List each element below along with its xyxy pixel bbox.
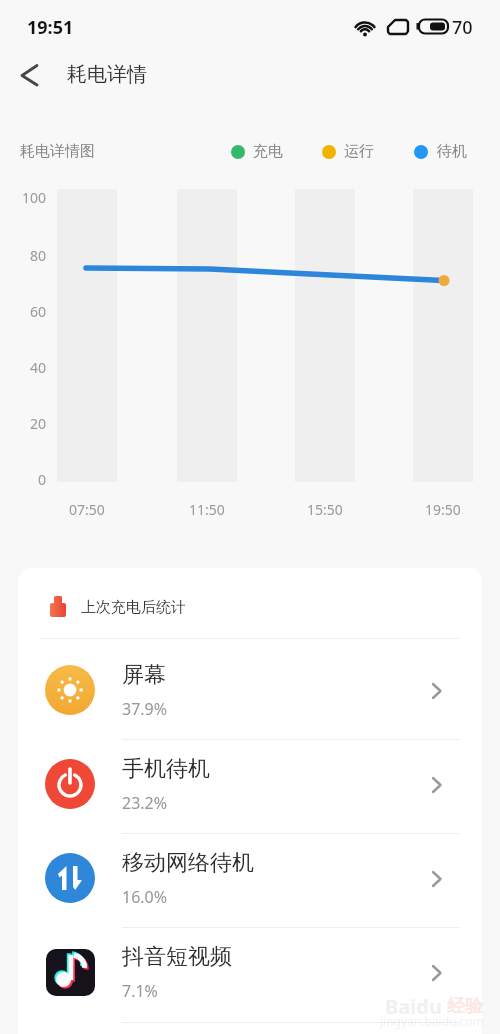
staticText: 23.2% bbox=[122, 792, 168, 814]
staticText: 37.9% bbox=[122, 698, 168, 720]
staticText: 待机 bbox=[437, 142, 467, 161]
button[interactable] bbox=[12, 58, 48, 94]
staticText: 经验 bbox=[447, 995, 483, 1018]
staticText: 充电 bbox=[253, 142, 283, 161]
staticText: 移动网络待机 bbox=[122, 849, 254, 877]
staticText: Baidu bbox=[385, 993, 442, 1020]
staticText: 11:50 bbox=[189, 500, 225, 519]
staticText: 耗电详情图 bbox=[20, 142, 95, 161]
staticText: 40 bbox=[30, 358, 47, 377]
staticText: 60 bbox=[30, 302, 47, 321]
staticText: 屏幕 bbox=[122, 661, 166, 689]
staticText: 19:50 bbox=[425, 500, 461, 519]
staticText: 15:50 bbox=[307, 500, 343, 519]
staticText: 上次充电后统计 bbox=[81, 598, 186, 617]
button[interactable]: 屏幕 bbox=[18, 643, 482, 737]
staticText: 抖音短视频 bbox=[122, 943, 232, 971]
staticText: 7.1% bbox=[122, 980, 158, 1002]
staticText: 20 bbox=[30, 414, 47, 433]
staticText: 19:51 bbox=[27, 15, 74, 40]
staticText: 手机待机 bbox=[122, 755, 210, 783]
staticText: 100 bbox=[22, 188, 47, 207]
staticText: 16.0% bbox=[122, 886, 168, 908]
staticText: jingyan.baidu.com bbox=[380, 1013, 484, 1029]
staticText: 80 bbox=[30, 246, 47, 265]
button[interactable]: 手机待机 bbox=[18, 737, 482, 831]
button[interactable]: 抖音短视频 bbox=[18, 925, 482, 1019]
staticText: 耗电详情 bbox=[67, 62, 147, 87]
staticText: 70 bbox=[452, 15, 473, 40]
staticText: 07:50 bbox=[69, 500, 105, 519]
staticText: 0 bbox=[38, 470, 47, 489]
staticText: 运行 bbox=[344, 142, 374, 161]
button[interactable]: 移动网络待机 bbox=[18, 831, 482, 925]
